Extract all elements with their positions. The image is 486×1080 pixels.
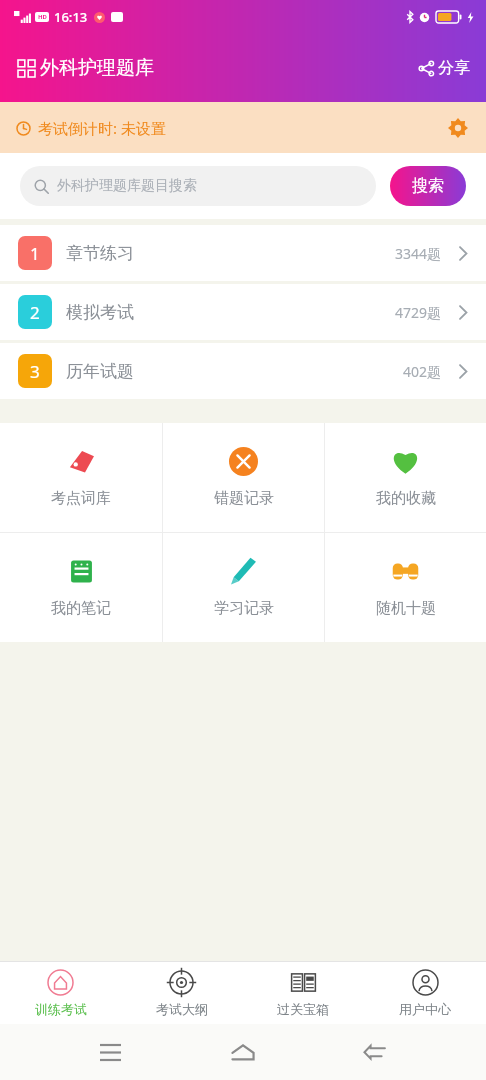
staticText: 外科护理题库题目搜索 (57, 177, 197, 195)
button[interactable]: 外科护理题库题目搜索 (20, 166, 376, 206)
button[interactable]: 考点词库 (0, 423, 162, 532)
button[interactable]: 设置倒计时 (444, 114, 472, 142)
staticText: 考点词库 (51, 489, 111, 508)
staticText: 3344题 (395, 244, 442, 263)
staticText: 外科护理题库 (40, 56, 154, 80)
staticText: 2 (30, 301, 40, 324)
button[interactable]: 错题记录 (163, 423, 324, 532)
staticText: 错题记录 (214, 489, 274, 508)
staticText: HD (38, 13, 47, 21)
button[interactable]: 随机十题 (325, 533, 486, 642)
staticText: 训练考试 (35, 1001, 87, 1017)
staticText: 过关宝箱 (277, 1001, 329, 1017)
button[interactable]: 分享 (403, 48, 486, 88)
button[interactable]: 我的收藏 (325, 423, 486, 532)
button[interactable]: 学习记录 (163, 533, 324, 642)
button[interactable]: 考试大纲 (121, 962, 242, 1024)
staticText: 随机十题 (376, 599, 436, 618)
staticText: 16:13 (54, 8, 88, 26)
staticText: 402题 (403, 362, 442, 381)
button[interactable]: Home (221, 1034, 265, 1071)
staticText: 历年试题 (66, 361, 134, 382)
button[interactable]: 搜索 (390, 166, 466, 206)
button[interactable]: Recents (90, 1035, 131, 1070)
staticText: 考试大纲 (156, 1001, 208, 1017)
button[interactable]: 1 (0, 225, 486, 281)
staticText: 3 (30, 360, 40, 383)
button[interactable]: 过关宝箱 (242, 962, 364, 1024)
staticText: 4729题 (395, 303, 442, 322)
staticText: 章节练习 (66, 243, 134, 264)
staticText: 分享 (438, 58, 470, 78)
staticText: 我的收藏 (376, 489, 436, 508)
button[interactable]: Back (354, 1035, 396, 1071)
button[interactable]: 考试倒计时: 未设置 (0, 102, 486, 153)
staticText: 1 (30, 242, 40, 265)
button[interactable]: 2 (0, 284, 486, 340)
button[interactable]: 用户中心 (364, 962, 486, 1024)
staticText: 用户中心 (399, 1001, 451, 1017)
button[interactable]: 3 (0, 343, 486, 399)
staticText: 我的笔记 (51, 599, 111, 618)
staticText: 学习记录 (214, 599, 274, 618)
staticText: 模拟考试 (66, 302, 134, 323)
button[interactable]: 我的笔记 (0, 533, 162, 642)
staticText: 搜索 (412, 176, 444, 196)
staticText: 考试倒计时: 未设置 (38, 118, 166, 138)
button[interactable]: 训练考试 (0, 962, 121, 1024)
